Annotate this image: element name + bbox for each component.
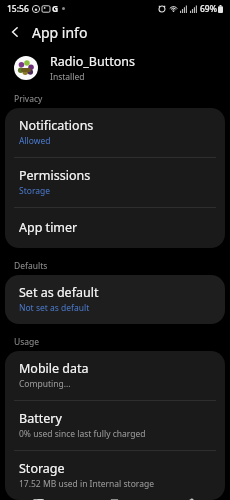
button[interactable]: Mobile data xyxy=(5,351,225,400)
staticText: Radio_Buttons xyxy=(50,53,135,70)
staticText: 69% xyxy=(200,3,217,15)
staticText: Defaults xyxy=(14,260,48,272)
button[interactable]: Battery xyxy=(5,401,225,450)
staticText: 17.52 MB used in Internal storage xyxy=(19,478,154,490)
staticText: Usage xyxy=(14,336,40,348)
staticText: Computing... xyxy=(19,378,71,390)
staticText: Not set as default xyxy=(19,302,90,314)
staticText: Installed xyxy=(50,71,85,83)
staticText: Storage xyxy=(19,460,65,477)
button[interactable]: Permissions xyxy=(5,158,225,207)
staticText: Allowed xyxy=(19,135,51,147)
staticText: App info xyxy=(32,23,88,42)
staticText: Notifications xyxy=(19,117,94,134)
staticText: G xyxy=(52,3,59,15)
button[interactable]: Set as default xyxy=(5,275,225,324)
button[interactable]: Back xyxy=(0,17,30,47)
button[interactable]: App timer xyxy=(5,208,225,248)
staticText: Mobile data xyxy=(19,360,89,377)
staticText: Privacy xyxy=(14,93,43,105)
staticText: App timer xyxy=(19,219,78,236)
staticText: Storage xyxy=(19,185,51,197)
staticText: Permissions xyxy=(19,167,91,184)
staticText: Set as default xyxy=(19,284,99,301)
staticText: 15:56 xyxy=(7,3,29,15)
button[interactable]: Storage xyxy=(5,451,225,500)
staticText: Battery xyxy=(19,410,62,427)
button[interactable]: Notifications xyxy=(5,108,225,157)
staticText: 0% used since last fully charged xyxy=(19,428,146,440)
